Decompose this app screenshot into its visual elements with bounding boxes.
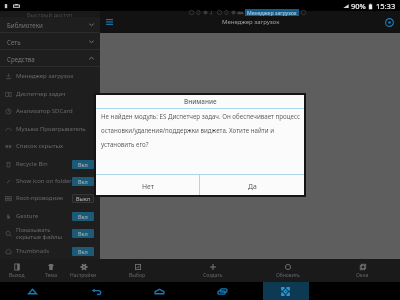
button[interactable]: Вкл <box>72 177 94 186</box>
staticText: Внимание <box>184 97 217 106</box>
staticText: Музыка Проигрыватель <box>16 125 86 133</box>
button[interactable]: Библиотеки <box>0 16 100 33</box>
staticText: Диспетчер задач <box>16 90 66 98</box>
button[interactable]: Recycle Bin <box>0 155 100 173</box>
staticText: Выход <box>9 272 25 279</box>
staticText: Thumbnails <box>16 247 50 255</box>
staticText: Средства <box>7 55 35 63</box>
staticText: Быстрый доступ <box>27 11 73 17</box>
staticText: Show icon on folder <box>16 177 72 185</box>
staticText: Менеджер загрузок <box>222 18 280 26</box>
button[interactable]: Settings <box>380 13 398 31</box>
button[interactable]: Окна <box>325 259 400 282</box>
staticText: Выбор <box>129 272 146 279</box>
staticText: Вкл <box>78 178 88 185</box>
button[interactable]: Home <box>128 282 191 300</box>
button[interactable]: Вкл <box>72 212 94 221</box>
staticText: Обновить <box>276 272 300 279</box>
staticText: Список скрытых <box>16 142 64 150</box>
staticText: Показывать скрытые файлы <box>16 226 63 241</box>
staticText: Root-проводник <box>16 194 64 202</box>
staticText: Менеджер загрузок <box>16 72 74 80</box>
button[interactable]: Обновить <box>250 259 325 282</box>
staticText: Вкл <box>78 161 88 168</box>
button[interactable]: Вкл <box>72 160 94 169</box>
staticText: Вкл <box>78 248 88 255</box>
button[interactable]: Up <box>0 282 64 300</box>
staticText: Gesture <box>16 212 39 220</box>
staticText: Анализатор SDCard <box>16 107 73 115</box>
staticText: Вкл <box>78 213 88 220</box>
button[interactable]: Список скрытых <box>0 137 100 155</box>
staticText: Да <box>248 182 257 191</box>
button[interactable]: Диспетчер задач <box>0 85 100 103</box>
button[interactable]: Root-проводник <box>0 189 100 207</box>
button[interactable]: Gesture <box>0 207 100 225</box>
button[interactable]: Средства <box>0 50 100 67</box>
button[interactable]: Recent apps <box>191 282 254 300</box>
staticText: Не найден модуль: ES Диспетчер задач. Он… <box>101 112 303 149</box>
staticText: Вкл <box>78 230 88 237</box>
staticText: Нет <box>142 182 154 191</box>
staticText: Менеджер загрузок <box>247 9 297 16</box>
button[interactable]: Показывать скрытые файлы <box>0 224 100 242</box>
button[interactable]: Создать <box>175 259 250 282</box>
button[interactable]: Да <box>200 175 304 195</box>
staticText: Сеть <box>7 38 21 46</box>
staticText: 15:33 <box>376 1 396 11</box>
button[interactable]: Музыка Проигрыватель <box>0 120 100 138</box>
button[interactable]: Выбор <box>100 259 175 282</box>
button[interactable]: Thumbnails <box>0 242 100 260</box>
button[interactable]: Back <box>64 282 128 300</box>
staticText: Тема <box>45 272 57 279</box>
staticText: Recycle Bin <box>16 160 48 168</box>
button[interactable]: Вкл <box>72 229 94 238</box>
staticText: Настройки <box>70 272 97 279</box>
button[interactable]: Screenshot <box>254 282 317 300</box>
staticText: Библиотеки <box>7 21 43 29</box>
button[interactable]: Настройки <box>67 259 100 282</box>
staticText: 90% <box>351 1 366 11</box>
button[interactable]: Анализатор SDCard <box>0 102 100 120</box>
button[interactable]: Выкл <box>72 194 94 203</box>
button[interactable]: Менеджер загрузок <box>0 67 100 85</box>
button[interactable]: Тема <box>34 259 67 282</box>
button[interactable]: Open navigation drawer <box>101 14 117 30</box>
button[interactable]: Вкл <box>72 247 94 256</box>
button[interactable]: Show icon on folder <box>0 172 100 190</box>
staticText: Создать <box>203 272 223 279</box>
staticText: Окна <box>356 272 369 279</box>
button[interactable]: Выход <box>0 259 34 282</box>
staticText: Выкл <box>76 195 90 202</box>
button[interactable]: Нет <box>96 175 199 195</box>
button[interactable]: Сеть <box>0 33 100 50</box>
